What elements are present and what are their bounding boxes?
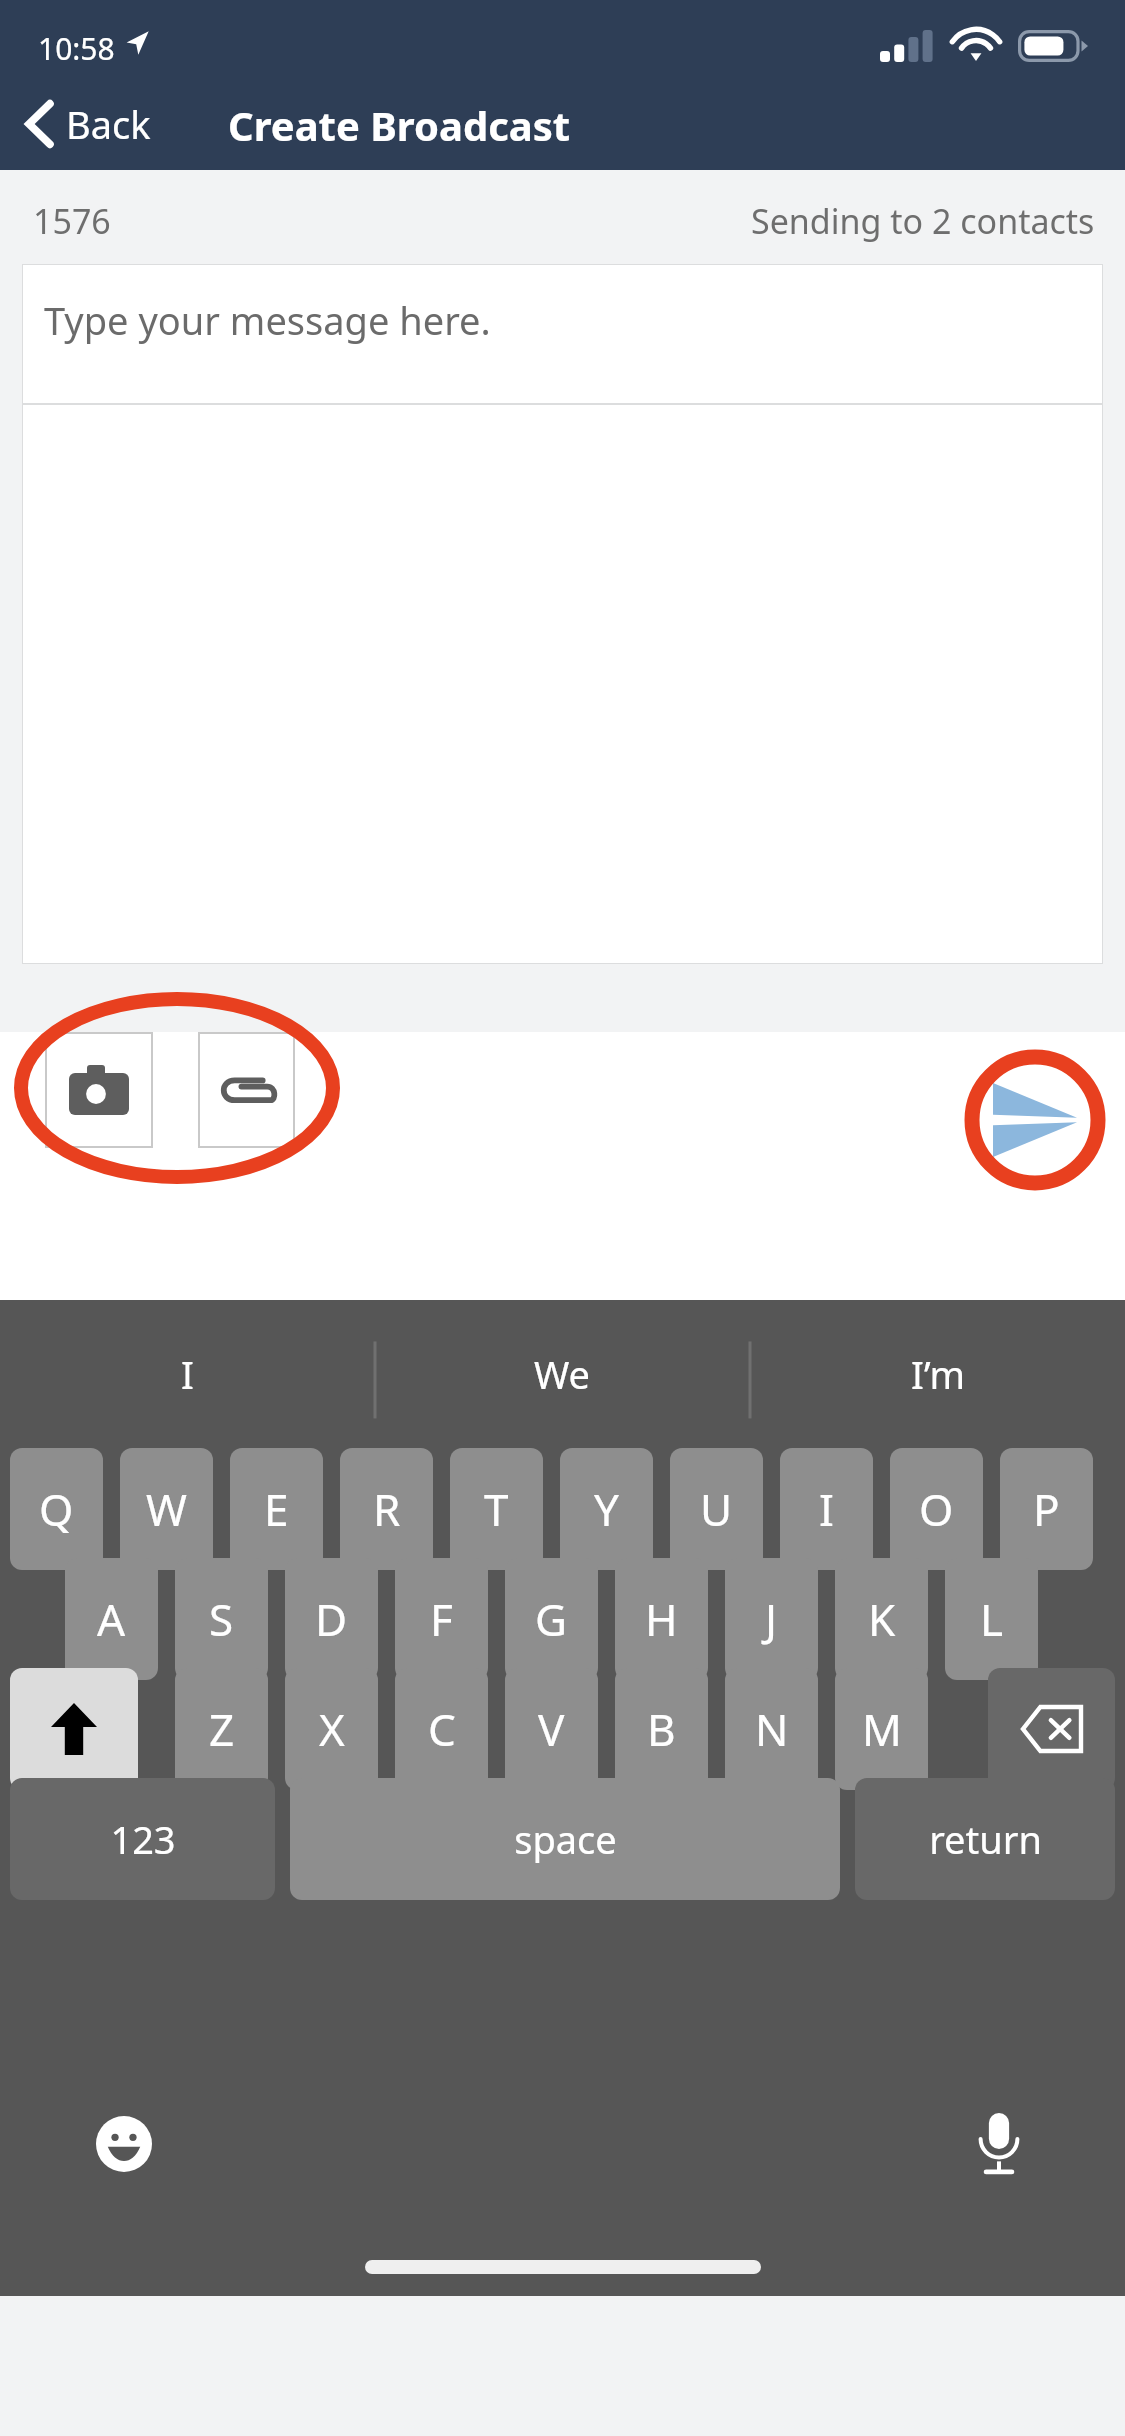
staticText: J <box>765 1589 778 1649</box>
button[interactable]: O <box>890 1448 983 1570</box>
staticText: X <box>319 1699 345 1759</box>
button[interactable]: return <box>855 1778 1115 1900</box>
button[interactable]: Take photo <box>45 1032 153 1148</box>
button[interactable]: 123 <box>10 1778 275 1900</box>
button[interactable]: Voice input <box>945 2090 1053 2198</box>
button[interactable]: Shift <box>10 1668 138 1790</box>
button[interactable]: P <box>1000 1448 1093 1570</box>
staticText: B <box>647 1699 676 1759</box>
button[interactable]: X <box>285 1668 378 1790</box>
staticText: 123 <box>110 1813 176 1865</box>
button[interactable]: Emoji <box>70 2090 178 2198</box>
button[interactable]: G <box>505 1558 598 1680</box>
button[interactable]: Back <box>18 92 159 156</box>
button[interactable]: S <box>175 1558 268 1680</box>
staticText: C <box>428 1699 456 1759</box>
button[interactable]: H <box>615 1558 708 1680</box>
button[interactable]: E <box>230 1448 323 1570</box>
staticText: E <box>264 1479 289 1539</box>
staticText: I’m <box>911 1348 965 1400</box>
button[interactable]: K <box>835 1558 928 1680</box>
button[interactable]: Z <box>175 1668 268 1790</box>
button[interactable]: Attach file <box>198 1032 295 1148</box>
button[interactable]: V <box>505 1668 598 1790</box>
staticText: L <box>980 1589 1004 1649</box>
staticText: V <box>538 1699 565 1759</box>
staticText: P <box>1033 1479 1060 1539</box>
staticText: F <box>430 1589 453 1649</box>
button[interactable]: W <box>120 1448 213 1570</box>
staticText: I <box>819 1479 834 1539</box>
button[interactable]: C <box>395 1668 488 1790</box>
staticText: A <box>97 1589 126 1649</box>
button[interactable]: I <box>0 1300 375 1448</box>
button[interactable]: U <box>670 1448 763 1570</box>
staticText: R <box>373 1479 401 1539</box>
button[interactable]: I’m <box>750 1300 1125 1448</box>
button[interactable]: R <box>340 1448 433 1570</box>
button[interactable]: Type your message here. <box>22 264 1103 404</box>
button[interactable]: T <box>450 1448 543 1570</box>
button[interactable]: Send <box>965 1050 1105 1190</box>
button[interactable]: M <box>835 1668 928 1790</box>
button[interactable]: L <box>945 1558 1038 1680</box>
button[interactable]: I <box>780 1448 873 1570</box>
button[interactable]: N <box>725 1668 818 1790</box>
staticText: Type your message here. <box>44 294 491 346</box>
button[interactable]: B <box>615 1668 708 1790</box>
staticText: H <box>645 1589 678 1649</box>
button[interactable]: Q <box>10 1448 103 1570</box>
staticText: We <box>534 1348 591 1400</box>
staticText: S <box>209 1589 234 1649</box>
button[interactable]: space <box>290 1778 840 1900</box>
staticText: W <box>146 1479 187 1539</box>
button[interactable]: D <box>285 1558 378 1680</box>
staticText: return <box>929 1813 1042 1865</box>
staticText: N <box>755 1699 789 1759</box>
staticText: 1576 <box>33 198 111 244</box>
staticText: Sending to 2 contacts <box>751 198 1095 244</box>
staticText: I <box>181 1348 194 1400</box>
staticText: Create Broadcast <box>228 98 571 152</box>
staticText: Back <box>66 98 151 150</box>
staticText: Z <box>209 1699 235 1759</box>
button[interactable]: J <box>725 1558 818 1680</box>
button[interactable]: A <box>65 1558 158 1680</box>
button[interactable]: F <box>395 1558 488 1680</box>
staticText: Q <box>39 1479 74 1539</box>
staticText: 10:58 <box>38 28 115 69</box>
staticText: space <box>514 1813 617 1865</box>
staticText: T <box>484 1479 509 1539</box>
button[interactable]: Y <box>560 1448 653 1570</box>
button[interactable]: Backspace <box>988 1668 1115 1790</box>
staticText: U <box>700 1479 733 1539</box>
staticText: K <box>868 1589 896 1649</box>
staticText: M <box>862 1699 902 1759</box>
staticText: O <box>919 1479 954 1539</box>
staticText: Y <box>594 1479 619 1539</box>
staticText: G <box>535 1589 568 1649</box>
staticText: D <box>315 1589 348 1649</box>
button[interactable]: We <box>375 1300 750 1448</box>
